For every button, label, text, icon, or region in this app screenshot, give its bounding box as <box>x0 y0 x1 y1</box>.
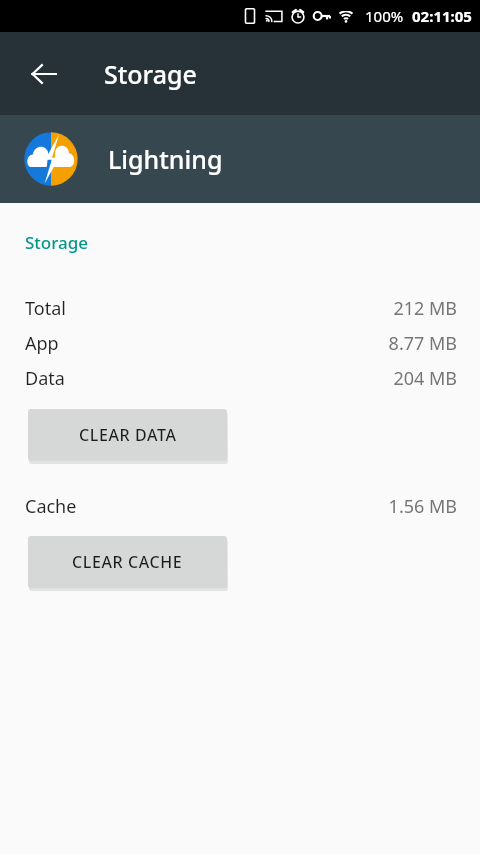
staticText: 8.77 MB <box>388 331 457 356</box>
staticText: 204 MB <box>393 366 457 391</box>
staticText: CLEAR DATA <box>79 424 177 446</box>
button[interactable]: CLEAR DATA <box>28 409 227 461</box>
button[interactable]: Cache <box>0 494 480 519</box>
button[interactable]: CLEAR CACHE <box>28 536 227 588</box>
staticText: Storage <box>104 57 197 91</box>
staticText: 1.56 MB <box>388 494 457 519</box>
button[interactable]: Back <box>20 50 68 98</box>
staticText: App <box>25 331 59 356</box>
staticText: Lightning <box>108 142 223 176</box>
staticText: 02:11:05 <box>412 6 472 26</box>
button[interactable]: Data <box>0 366 480 391</box>
staticText: Storage <box>25 231 89 254</box>
staticText: 100% <box>365 6 404 26</box>
button[interactable]: Total <box>0 296 480 321</box>
staticText: CLEAR CACHE <box>72 551 183 573</box>
staticText: Data <box>25 366 65 391</box>
staticText: 212 MB <box>393 296 457 321</box>
button[interactable]: App <box>0 331 480 356</box>
staticText: Cache <box>25 494 77 519</box>
staticText: Total <box>25 296 66 321</box>
